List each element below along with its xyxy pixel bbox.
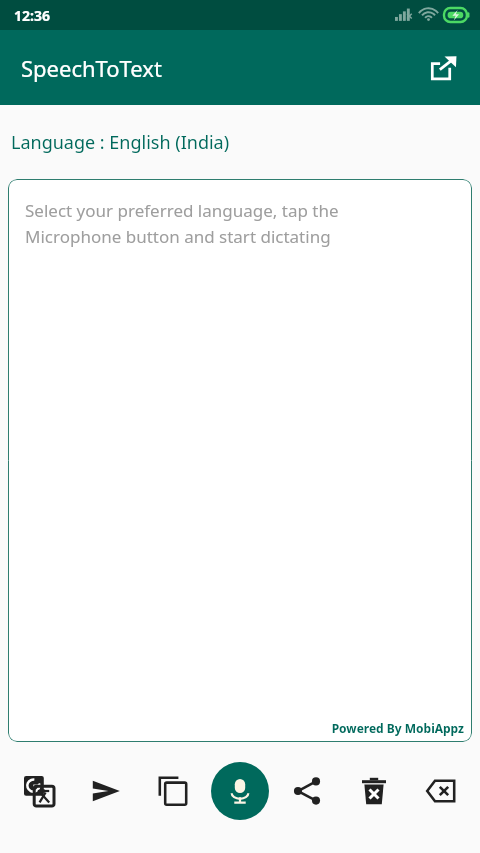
staticText: Language : English (India) [11, 130, 230, 155]
button[interactable]: Delete [340, 765, 407, 817]
button[interactable]: Send [72, 765, 139, 817]
staticText: Select your preferred language, tap the … [25, 199, 339, 248]
staticText: SpeechToText [21, 53, 162, 83]
button[interactable]: Share [273, 765, 340, 817]
button[interactable]: Copy [139, 765, 206, 817]
staticText: 12:36 [14, 6, 50, 25]
button[interactable]: Language : English (India) [0, 105, 480, 179]
button[interactable]: Select your preferred language, tap the … [8, 179, 472, 742]
button[interactable]: Microphone [211, 762, 269, 820]
button[interactable]: Share [420, 44, 468, 92]
button[interactable]: Translate [6, 765, 72, 817]
staticText: Powered By MobiAppz [331, 720, 464, 736]
button[interactable]: Backspace [407, 765, 474, 817]
